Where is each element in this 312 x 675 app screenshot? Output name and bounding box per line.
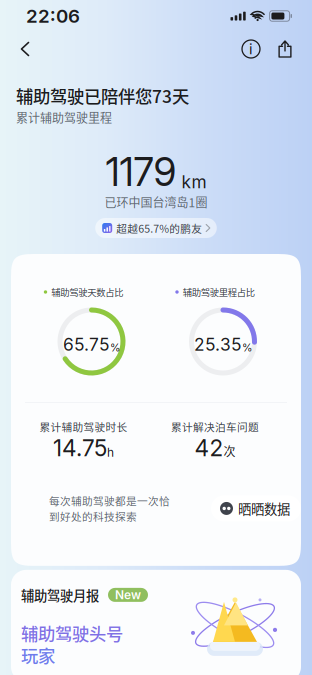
staticText: 玩家 bbox=[21, 642, 55, 667]
staticText: km bbox=[181, 171, 206, 192]
staticText: 累计解决泊车问题 bbox=[171, 419, 259, 434]
staticText: 超越65.7%的鹏友 bbox=[116, 220, 202, 236]
staticText: 次 bbox=[223, 442, 235, 460]
staticText: 65.75 bbox=[63, 334, 110, 355]
staticText: 晒晒数据 bbox=[238, 499, 290, 518]
button[interactable]: Share bbox=[268, 32, 302, 66]
staticText: 辅助驾驶月报 bbox=[21, 585, 99, 604]
staticText: 每次辅助驾驶都是一次恰到好处的科技探索 bbox=[49, 493, 170, 524]
staticText: New bbox=[115, 588, 141, 602]
staticText: 辅助驾驶天数占比 bbox=[51, 285, 123, 299]
staticText: 22:06 bbox=[26, 5, 80, 27]
staticText: 1179 bbox=[105, 149, 176, 195]
staticText: i bbox=[249, 40, 253, 58]
staticText: 42 bbox=[194, 434, 223, 462]
staticText: 辅助驾驶已陪伴您73天 bbox=[16, 83, 189, 108]
button[interactable]: Back bbox=[8, 32, 42, 66]
staticText: 已环中国台湾岛1圈 bbox=[104, 193, 207, 211]
staticText: 14.75 bbox=[53, 434, 107, 462]
button[interactable]: Info bbox=[234, 32, 268, 66]
staticText: % bbox=[242, 341, 252, 354]
staticText: 累计辅助驾驶里程 bbox=[16, 109, 112, 126]
staticText: 辅助驾驶里程占比 bbox=[183, 285, 255, 299]
staticText: 25.35 bbox=[194, 334, 242, 355]
staticText: % bbox=[110, 341, 120, 354]
staticText: h bbox=[107, 445, 114, 460]
staticText: 累计辅助驾驶时长 bbox=[39, 419, 127, 434]
button[interactable]: 超越65.7%的鹏友 bbox=[95, 218, 217, 238]
staticText: 辅助驾驶头号 bbox=[21, 620, 123, 645]
button[interactable]: 晒晒数据 bbox=[211, 495, 301, 521]
